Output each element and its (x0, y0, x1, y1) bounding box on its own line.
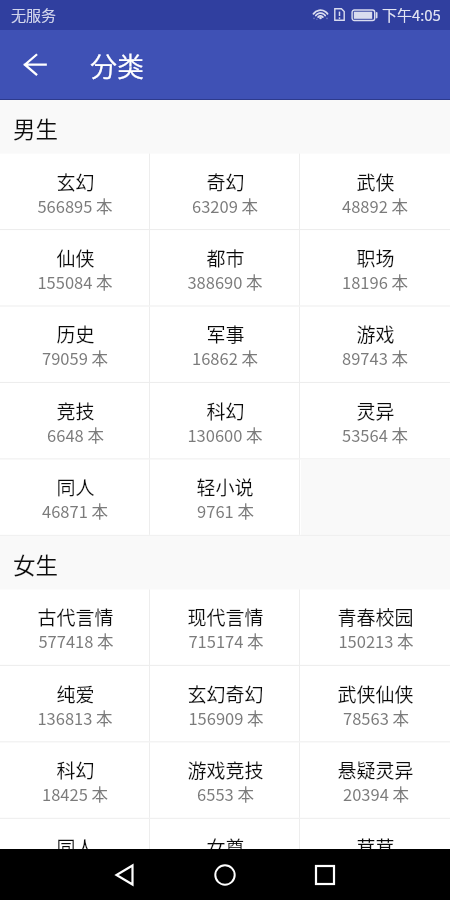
staticText: 63209 本 (192, 194, 258, 218)
button[interactable]: 女尊 (150, 819, 300, 849)
button[interactable]: Home (200, 850, 250, 900)
button[interactable]: 灵异 (300, 383, 450, 459)
staticText: 古代言情 (37, 603, 114, 631)
button[interactable]: 武侠仙侠 (300, 666, 450, 742)
button[interactable]: 青春校园 (300, 589, 450, 665)
staticText: 女尊 (206, 833, 245, 849)
staticText: 48892 本 (342, 194, 408, 218)
staticText: 16862 本 (192, 346, 258, 370)
staticText: 轻小说 (196, 473, 254, 501)
staticText: 武侠 (356, 168, 395, 196)
staticText: 灵异 (356, 397, 395, 425)
staticText: 同人 (56, 473, 95, 501)
staticText: 奇幻 (206, 168, 245, 196)
staticText: 纯爱 (56, 680, 95, 708)
staticText: 游戏竞技 (187, 756, 264, 784)
button[interactable]: Back (13, 43, 57, 87)
staticText: 388690 本 (187, 270, 263, 294)
button[interactable]: 纯爱 (0, 666, 150, 742)
staticText: 男生 (13, 112, 59, 145)
staticText: 6648 本 (47, 423, 104, 447)
staticText: 130600 本 (187, 423, 263, 447)
staticText: 79059 本 (42, 346, 108, 370)
staticText: 都市 (206, 244, 245, 272)
button[interactable]: Recents (300, 850, 350, 900)
staticText: 现代言情 (187, 603, 264, 631)
staticText: 竞技 (56, 397, 95, 425)
staticText: 仙侠 (56, 244, 95, 272)
staticText: 78563 本 (343, 706, 409, 730)
button[interactable]: 科幻 (150, 383, 300, 459)
staticText: 715174 本 (188, 629, 264, 653)
staticText: 历史 (56, 320, 95, 348)
button[interactable]: 悬疑灵异 (300, 742, 450, 818)
staticText: 18425 本 (42, 782, 108, 806)
button[interactable]: 军事 (150, 306, 300, 382)
staticText: 玄幻奇幻 (187, 680, 264, 708)
button[interactable]: 都市 (150, 230, 300, 306)
staticText: 武侠仙侠 (337, 680, 414, 708)
staticText: 游戏 (356, 320, 395, 348)
staticText: 女生 (13, 548, 59, 581)
button[interactable]: 玄幻奇幻 (150, 666, 300, 742)
button[interactable]: 游戏竞技 (150, 742, 300, 818)
staticText: 科幻 (206, 397, 245, 425)
button[interactable]: 职场 (300, 230, 450, 306)
staticText: 20394 本 (343, 782, 409, 806)
staticText: 下午4:05 (382, 4, 441, 26)
staticText: 89743 本 (342, 346, 408, 370)
staticText: 茸茸 (356, 833, 395, 849)
button[interactable]: 游戏 (300, 306, 450, 382)
staticText: 53564 本 (342, 423, 408, 447)
staticText: 军事 (206, 320, 245, 348)
button[interactable]: 茸茸 (300, 819, 450, 849)
staticText: 150213 本 (338, 629, 414, 653)
button[interactable]: 现代言情 (150, 589, 300, 665)
button[interactable]: 仙侠 (0, 230, 150, 306)
staticText: 悬疑灵异 (337, 756, 414, 784)
staticText: 分类 (90, 46, 144, 85)
button[interactable]: 历史 (0, 306, 150, 382)
button[interactable]: 奇幻 (150, 154, 300, 230)
staticText: 156909 本 (188, 706, 264, 730)
button[interactable]: 同人 (0, 459, 150, 535)
staticText: 9761 本 (197, 499, 254, 523)
button[interactable]: 轻小说 (150, 459, 300, 535)
button[interactable]: Back (100, 850, 150, 900)
staticText: 46871 本 (42, 499, 108, 523)
staticText: 6553 本 (197, 782, 254, 806)
staticText: 155084 本 (37, 270, 113, 294)
staticText: 566895 本 (37, 194, 113, 218)
button[interactable]: 古代言情 (0, 589, 150, 665)
staticText: 青春校园 (337, 603, 414, 631)
staticText: 18196 本 (342, 270, 408, 294)
button[interactable]: 同人 (0, 819, 150, 849)
button[interactable]: 玄幻 (0, 154, 150, 230)
staticText: 同人 (56, 833, 95, 849)
staticText: 玄幻 (56, 168, 95, 196)
staticText: 无服务 (11, 4, 57, 26)
button[interactable]: 科幻 (0, 742, 150, 818)
button[interactable]: 竞技 (0, 383, 150, 459)
staticText: 577418 本 (38, 629, 114, 653)
staticText: 科幻 (56, 756, 95, 784)
staticText: 职场 (356, 244, 395, 272)
button[interactable]: 武侠 (300, 154, 450, 230)
staticText: 136813 本 (37, 706, 113, 730)
